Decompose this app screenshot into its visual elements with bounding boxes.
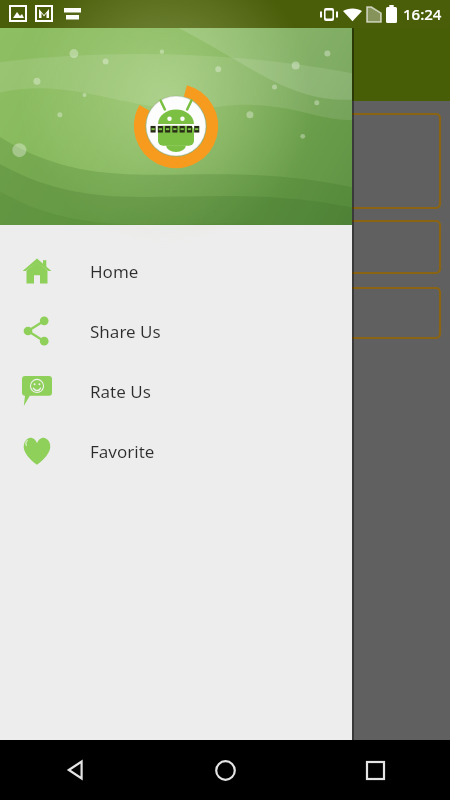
button[interactable]: Recent apps [300, 740, 450, 800]
staticText: Rate Us [90, 380, 151, 403]
staticText: Home [90, 260, 139, 283]
button[interactable] [14, 221, 440, 273]
button[interactable]: Part1 [14, 114, 440, 208]
button[interactable]: Back [0, 740, 150, 800]
staticText: 16:24 [403, 4, 442, 24]
button[interactable]: Share Us [0, 301, 352, 361]
button[interactable]: Home [0, 241, 352, 301]
button[interactable]: Home [150, 740, 300, 800]
staticText: Part1 [231, 143, 300, 180]
button[interactable]: Rate Us [0, 361, 352, 421]
button[interactable] [14, 288, 440, 338]
staticText: Favorite [90, 440, 155, 463]
button[interactable]: Favorite [0, 421, 352, 481]
staticText: Share Us [90, 320, 161, 343]
